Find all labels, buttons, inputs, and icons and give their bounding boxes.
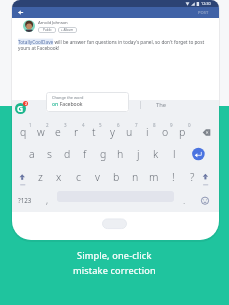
button[interactable]: + Album xyxy=(58,27,77,33)
staticText: y xyxy=(110,125,115,139)
staticText: 5 xyxy=(99,122,102,128)
staticText: TotallyCoolDave will be answer fan quest… xyxy=(18,39,205,45)
staticText: c xyxy=(76,170,81,184)
button[interactable] xyxy=(12,7,219,18)
staticText: t xyxy=(92,125,96,139)
staticText: 7 xyxy=(135,122,138,128)
staticText: 2 xyxy=(46,122,49,128)
staticText: . xyxy=(183,194,186,206)
staticText: 9 xyxy=(170,122,173,128)
staticText: ? xyxy=(190,170,195,184)
staticText: 12:30 xyxy=(201,1,211,6)
staticText: The xyxy=(156,101,167,109)
staticText: q xyxy=(20,125,27,139)
staticText: 6 xyxy=(117,122,120,128)
button[interactable]: ?123 xyxy=(18,195,32,205)
staticText: Simple, one-click xyxy=(77,249,152,262)
staticText: u xyxy=(126,125,133,139)
staticText: z xyxy=(38,170,43,184)
button[interactable]: The xyxy=(156,101,167,109)
staticText: , xyxy=(46,194,49,206)
button[interactable]: Change the word xyxy=(46,92,129,112)
staticText: b xyxy=(113,170,120,184)
staticText: f xyxy=(83,147,87,161)
staticText: x xyxy=(56,170,62,184)
staticText: o xyxy=(162,125,169,139)
staticText: 3 xyxy=(64,122,67,128)
staticText: n xyxy=(132,170,139,184)
staticText: POST xyxy=(198,10,209,16)
staticText: on Facebook xyxy=(52,101,83,108)
staticText: d xyxy=(64,147,71,161)
staticText: j xyxy=(137,147,140,161)
staticText: ! xyxy=(172,170,175,184)
staticText: yours at Facebook! xyxy=(18,45,60,51)
staticText: i xyxy=(146,125,149,139)
staticText: 2 xyxy=(25,101,27,106)
staticText: ?123 xyxy=(18,196,32,204)
staticText: 4 xyxy=(82,122,85,128)
staticText: Arnold Johnson xyxy=(38,19,68,25)
staticText: l xyxy=(173,147,176,161)
staticText: r xyxy=(74,125,79,139)
staticText: w xyxy=(37,125,45,139)
staticText: e xyxy=(55,125,61,139)
button[interactable]: Public xyxy=(38,27,56,33)
staticText: Public xyxy=(43,28,52,32)
staticText: a xyxy=(29,147,35,161)
staticText: p xyxy=(179,125,186,139)
staticText: G xyxy=(17,103,24,114)
staticText: k xyxy=(153,147,159,161)
staticText: + Album xyxy=(61,28,74,32)
staticText: g xyxy=(100,147,107,161)
staticText: 8 xyxy=(153,122,156,128)
staticText: s xyxy=(47,147,52,161)
staticText: 1 xyxy=(29,122,32,128)
staticText: 0 xyxy=(188,122,191,128)
button[interactable]: G xyxy=(15,103,26,114)
staticText: v xyxy=(95,170,100,184)
staticText: h xyxy=(117,147,124,161)
staticText: mistake correction xyxy=(73,264,156,277)
button[interactable]: POST xyxy=(198,10,209,16)
staticText: Change the word xyxy=(52,95,84,100)
staticText: m xyxy=(149,170,159,184)
